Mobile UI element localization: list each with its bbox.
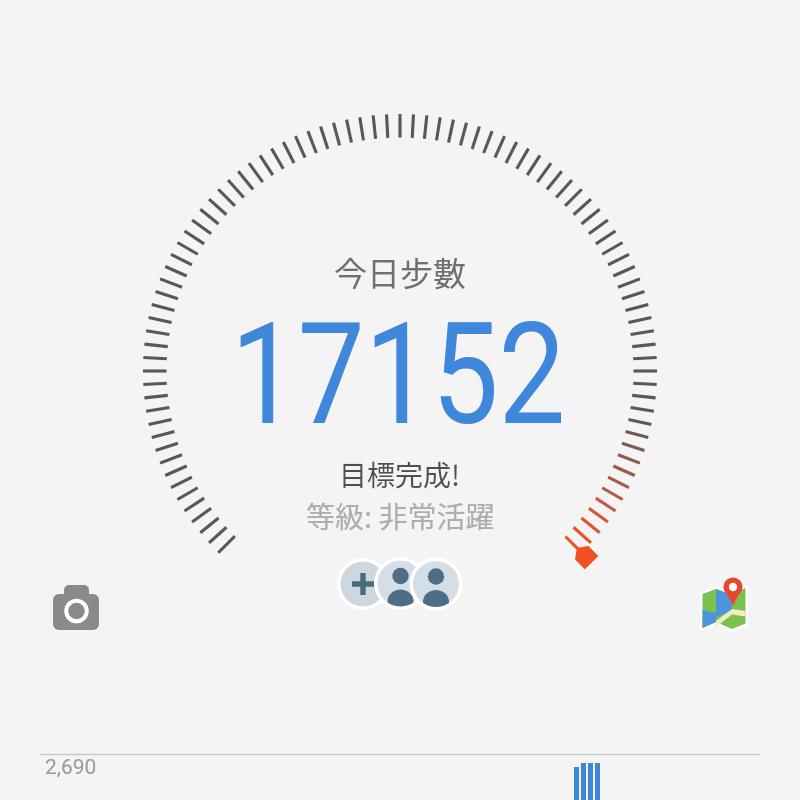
button[interactable]: [694, 570, 756, 632]
staticText: 目標完成!: [339, 454, 461, 495]
staticText: 17152: [231, 292, 566, 457]
staticText: 2,690: [45, 755, 97, 780]
button[interactable]: [570, 758, 604, 800]
staticText: 等級: 非常活躍: [306, 494, 495, 536]
staticText: 今日步數: [334, 248, 466, 296]
button[interactable]: [337, 558, 389, 610]
button[interactable]: [46, 578, 106, 638]
button[interactable]: [374, 557, 463, 610]
